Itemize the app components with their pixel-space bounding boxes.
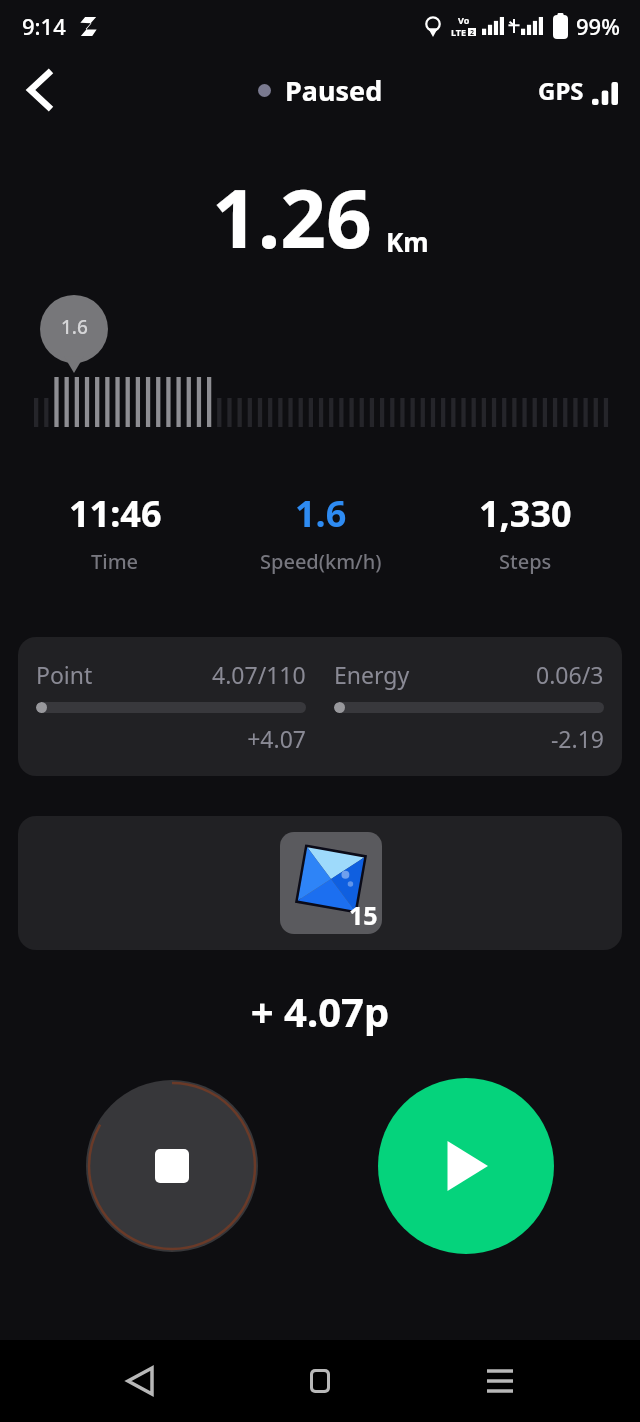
staticText: 9:14 [22, 11, 66, 41]
staticText: Steps [499, 548, 552, 575]
staticText: 1.6 [61, 314, 88, 340]
staticText: Energy [334, 659, 410, 690]
staticText: Vo [458, 14, 470, 26]
staticText: 1,330 [479, 489, 572, 538]
staticText: LTE [451, 26, 467, 38]
button[interactable]: 1,330 [423, 489, 628, 575]
staticText: 1.6 [295, 489, 347, 538]
button[interactable]: 15 [18, 816, 622, 950]
staticText: 11:46 [69, 489, 162, 538]
button[interactable]: Stop [86, 1080, 258, 1252]
staticText: +4.07 [36, 723, 306, 754]
button[interactable]: Resume [378, 1078, 554, 1254]
staticText: Speed(km/h) [260, 548, 382, 575]
staticText: Paused [285, 72, 383, 109]
button[interactable]: Back [100, 1341, 180, 1421]
staticText: 1.26 [212, 162, 372, 271]
button[interactable]: Home [280, 1341, 360, 1421]
staticText: + 4.07p [0, 984, 640, 1038]
button[interactable]: Point [36, 659, 306, 754]
staticText: 4.07/110 [212, 659, 306, 690]
staticText: 15 [349, 898, 378, 932]
staticText: -2.19 [334, 723, 604, 754]
staticText: 0.06/3 [536, 659, 604, 690]
button[interactable]: Back [8, 58, 72, 122]
staticText: Point [36, 659, 93, 690]
staticText: 2 [470, 28, 475, 36]
staticText: Time [91, 548, 139, 575]
staticText: 99% [576, 11, 620, 41]
button[interactable]: 11:46 [12, 489, 218, 575]
staticText: Km [386, 224, 429, 259]
button[interactable]: GPS [538, 74, 618, 107]
staticText: GPS [538, 74, 584, 107]
button[interactable]: Recents [460, 1341, 540, 1421]
button[interactable]: Energy [334, 659, 604, 754]
button[interactable]: 1.6 [218, 489, 423, 575]
